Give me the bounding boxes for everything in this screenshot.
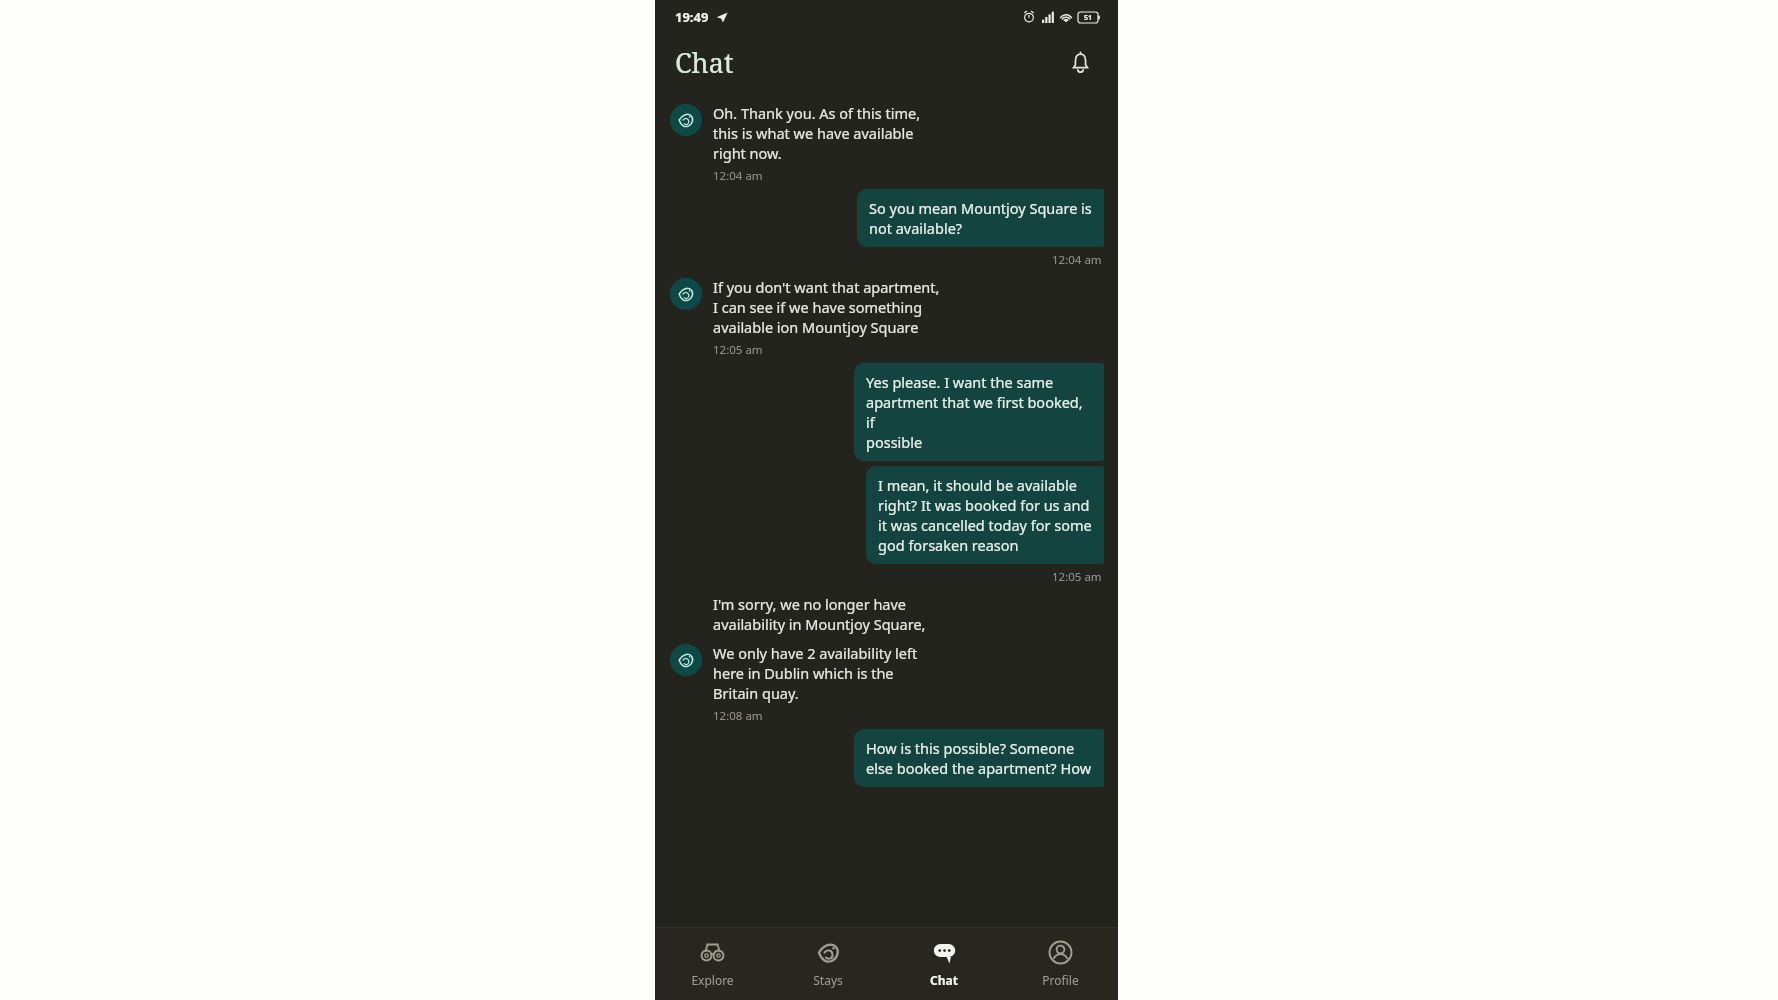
staticText: Yes please. I want the same apartment th… <box>866 372 1092 452</box>
staticText: If you don't want that apartment, I can … <box>713 277 940 337</box>
button[interactable]: Chat <box>886 928 1002 1000</box>
button[interactable]: Oh. Thank you. As of this time, this is … <box>669 99 1104 189</box>
button[interactable]: Explore <box>655 928 770 1000</box>
button[interactable]: So you mean Mountjoy Square is not avail… <box>857 189 1104 247</box>
staticText: We only have 2 availability left here in… <box>713 643 918 703</box>
button[interactable]: Notifications <box>1060 42 1100 82</box>
button[interactable]: I mean, it should be available right? It… <box>866 466 1104 564</box>
staticText: Oh. Thank you. As of this time, this is … <box>713 103 921 163</box>
staticText: 12:04 am <box>713 168 763 184</box>
staticText: Explore <box>691 972 734 988</box>
staticText: 12:05 am <box>1052 569 1102 585</box>
staticText: 19:49 <box>675 8 709 26</box>
button[interactable]: If you don't want that apartment, I can … <box>669 273 1104 363</box>
button[interactable]: I'm sorry, we no longer have availabilit… <box>669 590 1104 639</box>
staticText: So you mean Mountjoy Square is not avail… <box>869 198 1092 238</box>
staticText: Chat <box>930 972 958 988</box>
button[interactable]: Stays <box>770 928 886 1000</box>
button[interactable]: How is this possible? Someone else booke… <box>854 729 1104 787</box>
staticText: How is this possible? Someone else booke… <box>866 738 1092 778</box>
staticText: 12:04 am <box>1052 252 1102 268</box>
staticText: Chat <box>675 44 734 81</box>
staticText: I mean, it should be available right? It… <box>878 475 1092 555</box>
staticText: 51 <box>1084 13 1093 23</box>
staticText: 12:05 am <box>713 342 763 358</box>
staticText: 12:08 am <box>713 708 763 724</box>
staticText: Stays <box>813 972 843 988</box>
button[interactable]: Yes please. I want the same apartment th… <box>854 363 1104 461</box>
staticText: I'm sorry, we no longer have availabilit… <box>713 594 926 634</box>
staticText: Profile <box>1042 972 1079 988</box>
button[interactable]: Profile <box>1002 928 1118 1000</box>
button[interactable]: We only have 2 availability left here in… <box>669 639 1104 729</box>
